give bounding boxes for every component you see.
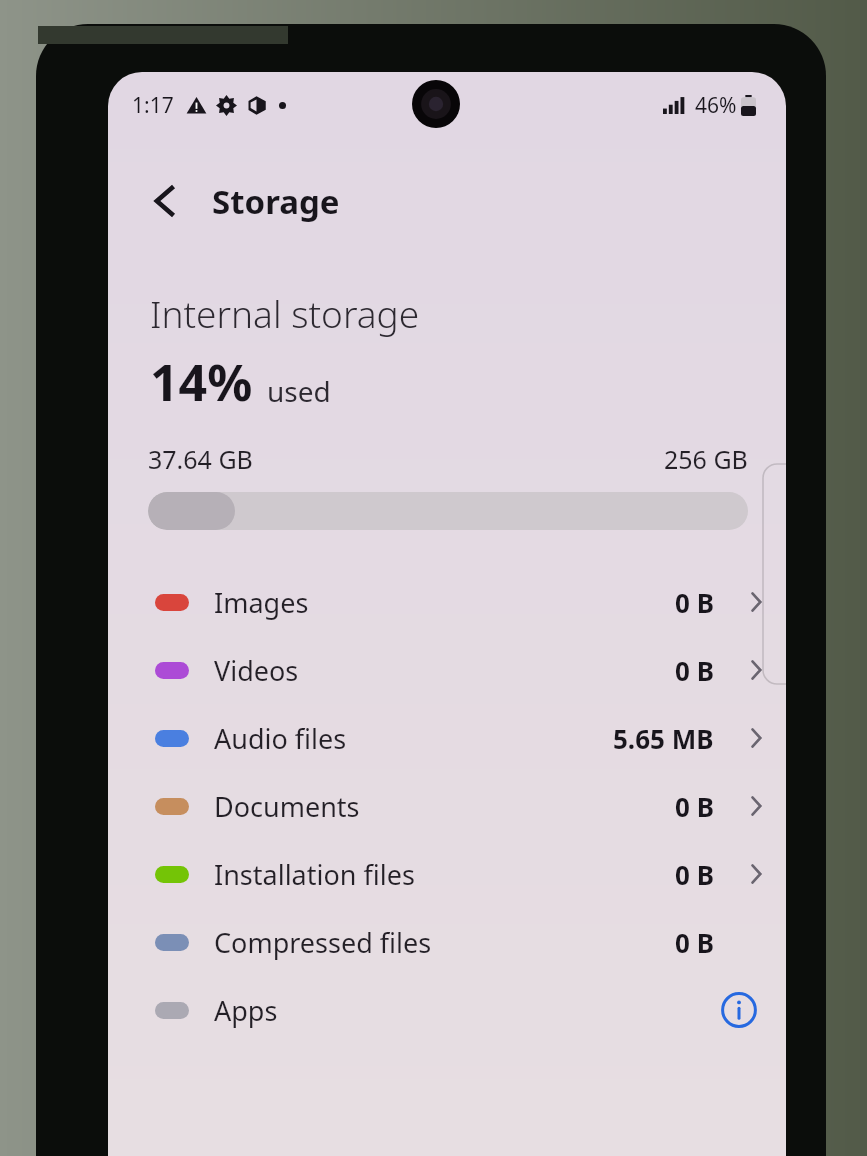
- staticText: 0 B: [675, 925, 714, 960]
- staticText: 0 B: [675, 653, 714, 688]
- button[interactable]: Images: [108, 568, 786, 636]
- button[interactable]: Compressed files: [108, 908, 786, 976]
- button[interactable]: Audio files: [108, 704, 786, 772]
- staticText: Installation files: [214, 856, 415, 893]
- staticText: Images: [214, 584, 309, 621]
- staticText: Documents: [214, 788, 360, 825]
- staticText: Compressed files: [214, 924, 432, 961]
- staticText: 5.65 MB: [613, 721, 714, 756]
- staticText: 0 B: [675, 857, 714, 892]
- staticText: Storage: [212, 179, 340, 224]
- staticText: 0 B: [675, 789, 714, 824]
- staticText: 37.64 GB: [148, 442, 253, 476]
- staticText: Internal storage: [150, 288, 420, 338]
- staticText: 1:17: [132, 91, 174, 120]
- button[interactable]: Back: [134, 170, 196, 232]
- staticText: 0 B: [675, 585, 714, 620]
- staticText: 46%: [695, 91, 737, 120]
- staticText: used: [267, 372, 331, 410]
- staticText: 14%: [150, 348, 253, 416]
- button[interactable]: Documents: [108, 772, 786, 840]
- button[interactable]: Apps: [108, 976, 786, 1044]
- button[interactable]: App info: [716, 987, 762, 1033]
- button[interactable]: Videos: [108, 636, 786, 704]
- staticText: 256 GB: [664, 442, 748, 476]
- button[interactable]: Installation files: [108, 840, 786, 908]
- staticText: Apps: [214, 992, 278, 1029]
- staticText: Audio files: [214, 720, 347, 757]
- staticText: Videos: [214, 652, 299, 689]
